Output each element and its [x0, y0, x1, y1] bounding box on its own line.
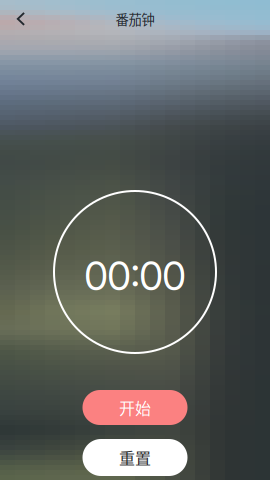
staticText: 番茄钟 [115, 9, 154, 29]
staticText: 00:00 [84, 252, 185, 300]
staticText: 重置 [119, 446, 151, 469]
button[interactable]: 重置 [82, 439, 187, 476]
staticText: 开始 [119, 396, 151, 419]
button[interactable]: Back [0, 0, 42, 38]
button[interactable]: 开始 [82, 390, 187, 425]
